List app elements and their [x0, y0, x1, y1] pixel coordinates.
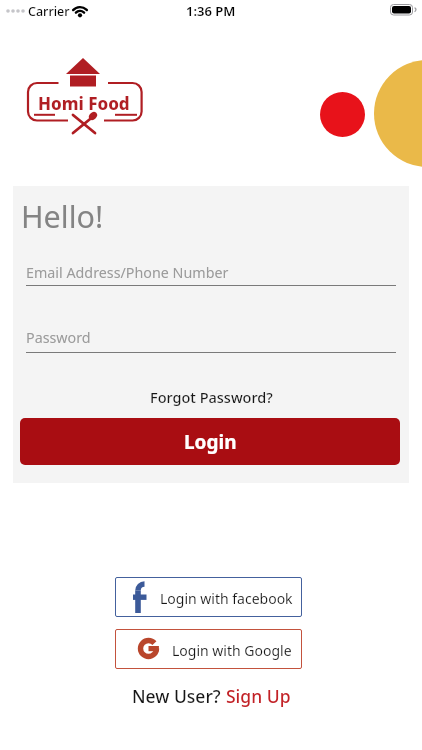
button[interactable]: Forgot Password?	[13, 387, 409, 407]
staticText: Login	[184, 429, 237, 455]
staticText: Homi Food	[38, 92, 130, 115]
staticText: Password	[26, 328, 91, 347]
staticText: Carrier	[28, 3, 70, 20]
button[interactable]: Login with facebook	[115, 577, 302, 617]
button[interactable]: Login with Google	[115, 629, 302, 669]
button[interactable]: Login	[20, 418, 400, 465]
button[interactable]: Sign Up	[226, 684, 291, 708]
staticText: Email Address/Phone Number	[26, 263, 229, 282]
staticText: Login with facebook	[160, 589, 293, 608]
button[interactable]: Homi Food	[25, 55, 145, 140]
staticText: Forgot Password?	[150, 387, 273, 407]
staticText: 1:36 PM	[186, 2, 236, 20]
staticText: Hello!	[21, 195, 104, 237]
staticText: New User?	[132, 684, 226, 708]
staticText: Login with Google	[172, 641, 292, 660]
